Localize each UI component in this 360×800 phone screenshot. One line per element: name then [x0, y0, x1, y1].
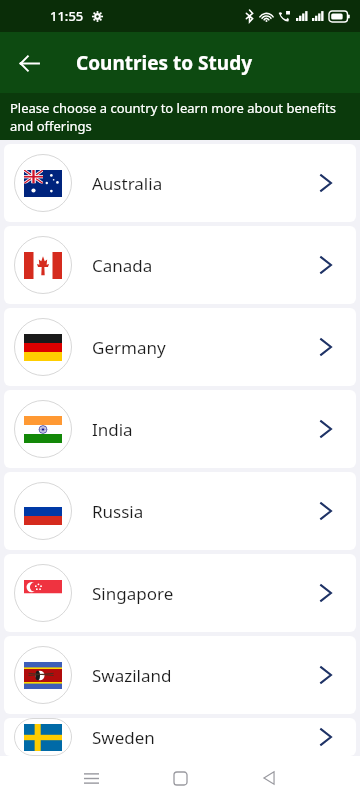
staticText: Please choose a country to learn more ab…: [10, 99, 350, 135]
button[interactable]: Russia: [4, 472, 356, 550]
staticText: Countries to Study: [76, 50, 252, 76]
staticText: Canada: [92, 254, 319, 277]
button[interactable]: Germany: [4, 308, 356, 386]
staticText: Russia: [92, 500, 319, 523]
staticText: Germany: [92, 336, 319, 359]
button[interactable]: Swaziland: [4, 636, 356, 714]
button[interactable]: Canada: [4, 226, 356, 304]
staticText: Australia: [92, 172, 319, 195]
staticText: Swaziland: [92, 664, 319, 687]
staticText: India: [92, 418, 319, 441]
button[interactable]: India: [4, 390, 356, 468]
button[interactable]: Back: [12, 46, 46, 80]
staticText: 11:55: [50, 7, 84, 25]
staticText: Singapore: [92, 582, 319, 605]
staticText: Sweden: [92, 726, 319, 749]
button[interactable]: Australia: [4, 144, 356, 222]
button[interactable]: Home: [163, 761, 197, 795]
button[interactable]: Recent apps: [74, 761, 108, 795]
button[interactable]: Sweden: [4, 718, 356, 756]
button[interactable]: Back: [252, 761, 286, 795]
button[interactable]: Singapore: [4, 554, 356, 632]
